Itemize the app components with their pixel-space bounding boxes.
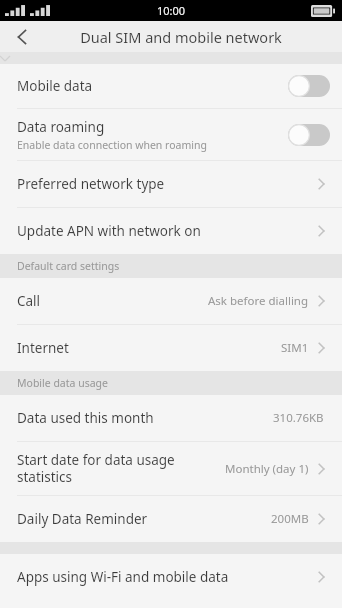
staticText: Default card settings bbox=[17, 259, 120, 273]
button[interactable]: Back bbox=[2, 21, 42, 52]
button[interactable]: Data used this month bbox=[0, 395, 342, 441]
staticText: Ask before dialling bbox=[208, 293, 309, 309]
button[interactable]: Internet bbox=[0, 325, 342, 371]
button[interactable]: Start date for data usage statistics bbox=[0, 442, 342, 495]
staticText: Start date for data usage statistics bbox=[17, 451, 225, 486]
staticText: Data used this month bbox=[17, 409, 154, 427]
staticText: Mobile data usage bbox=[17, 376, 108, 390]
staticText: Monthly (day 1) bbox=[225, 461, 309, 477]
staticText: Enable data connection when roaming bbox=[17, 138, 207, 152]
staticText: Update APN with network on bbox=[17, 222, 201, 240]
staticText: 310.76KB bbox=[273, 410, 324, 426]
staticText: Call bbox=[17, 292, 41, 310]
button[interactable]: Preferred network type bbox=[0, 161, 342, 207]
button[interactable]: Data roaming bbox=[0, 109, 342, 160]
button[interactable]: Update APN with network on bbox=[0, 208, 342, 254]
staticText: Data roaming bbox=[17, 118, 105, 136]
button[interactable]: Toggle bbox=[288, 124, 330, 146]
button[interactable]: Toggle bbox=[288, 75, 330, 97]
staticText: Apps using Wi-Fi and mobile data bbox=[17, 568, 229, 586]
staticText: Daily Data Reminder bbox=[17, 510, 148, 528]
staticText: Preferred network type bbox=[17, 175, 165, 193]
staticText: Internet bbox=[17, 339, 69, 357]
button[interactable]: Apps using Wi-Fi and mobile data bbox=[0, 554, 342, 600]
button[interactable]: Daily Data Reminder bbox=[0, 496, 342, 542]
staticText: Dual SIM and mobile network bbox=[80, 27, 282, 47]
staticText: Mobile data bbox=[17, 77, 93, 95]
staticText: 200MB bbox=[271, 511, 309, 527]
button[interactable]: Mobile data bbox=[0, 64, 342, 108]
button[interactable]: Call bbox=[0, 278, 342, 324]
staticText: 10:00 bbox=[157, 3, 186, 18]
staticText: SIM1 bbox=[281, 340, 309, 356]
